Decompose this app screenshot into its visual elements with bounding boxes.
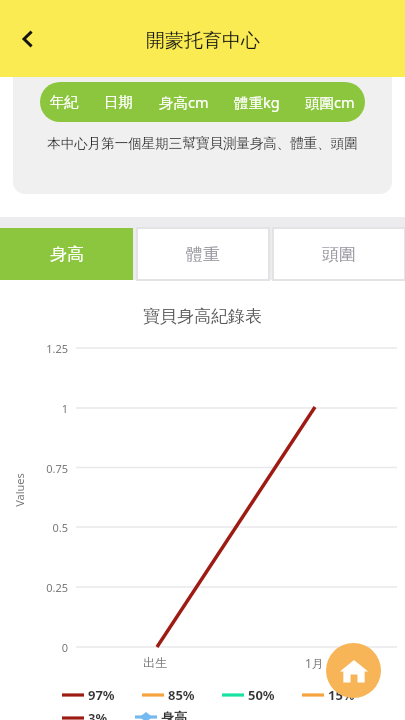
staticText: 頭圍cm xyxy=(305,92,355,112)
button[interactable]: Home xyxy=(326,643,381,698)
staticText: 年紀 xyxy=(50,93,79,111)
staticText: 85% xyxy=(168,686,195,704)
button[interactable]: 年紀 xyxy=(40,82,365,122)
staticText: 身高 xyxy=(50,244,84,265)
staticText: 本中心月第一個星期三幫寶貝測量身高、體重、頭圍 xyxy=(38,135,367,152)
staticText: 1月 xyxy=(305,655,324,671)
button[interactable]: 頭圍 xyxy=(273,228,405,280)
staticText: 體重kg xyxy=(234,92,280,112)
staticText: 50% xyxy=(248,686,275,704)
staticText: 頭圍 xyxy=(322,244,356,265)
staticText: 0 xyxy=(24,640,68,655)
staticText: 0.5 xyxy=(24,520,68,535)
staticText: 身高 xyxy=(161,709,187,720)
staticText: 1.25 xyxy=(24,341,68,356)
staticText: 15% xyxy=(328,686,355,704)
staticText: 寶貝身高紀錄表 xyxy=(0,306,405,327)
staticText: 出生 xyxy=(143,655,167,670)
staticText: 開蒙托育中心 xyxy=(146,29,260,53)
button[interactable]: 身高 xyxy=(0,228,133,280)
staticText: 日期 xyxy=(104,93,133,111)
staticText: 3% xyxy=(88,709,108,720)
staticText: Values xyxy=(12,460,32,520)
staticText: 1 xyxy=(24,401,68,416)
staticText: 體重 xyxy=(186,244,220,265)
staticText: 0.25 xyxy=(24,580,68,595)
button[interactable]: 體重 xyxy=(137,228,269,280)
button[interactable]: Back xyxy=(4,15,52,63)
staticText: 97% xyxy=(88,686,115,704)
staticText: 身高cm xyxy=(159,92,209,112)
staticText: 0.75 xyxy=(24,461,68,476)
